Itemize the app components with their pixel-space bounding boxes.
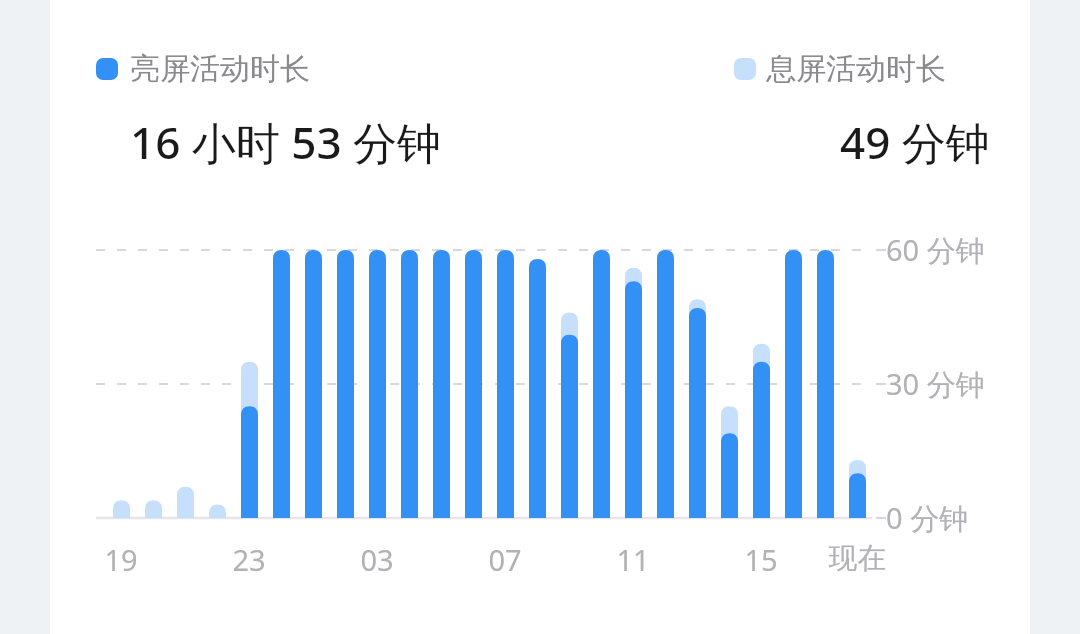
button[interactable]: Screen time chart: [0, 0, 1080, 634]
